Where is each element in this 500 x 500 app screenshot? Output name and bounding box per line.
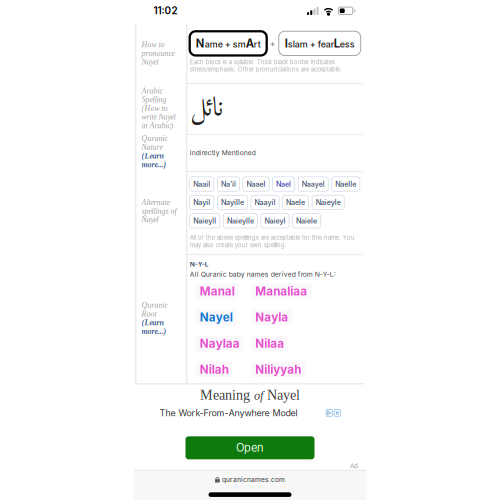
staticText: Quranic — [141, 301, 167, 309]
staticText: Nature — [141, 143, 162, 151]
staticText: more...) — [141, 160, 166, 169]
button[interactable]: Nayille — [217, 195, 247, 210]
button[interactable]: Nilaa — [251, 335, 288, 351]
staticText: Naiele — [296, 216, 317, 225]
staticText: Naael — [246, 180, 265, 188]
button[interactable]: Naail — [190, 177, 214, 191]
button[interactable]: Naele — [282, 195, 309, 210]
staticText: in Arabic) — [141, 121, 173, 130]
button[interactable]: Manal — [196, 283, 239, 299]
button[interactable]: Nayel — [196, 309, 237, 325]
staticText: 11:02 — [153, 5, 177, 17]
staticText: Nayil — [193, 198, 210, 207]
staticText: spellings of — [141, 207, 176, 215]
button[interactable]: Manaliaa — [251, 283, 311, 299]
staticText: The Work-From-Anywhere Model — [159, 407, 297, 418]
staticText: Naieyll — [193, 216, 216, 225]
button[interactable]: Nael — [272, 177, 295, 191]
staticText: Nayla — [255, 310, 288, 324]
button[interactable]: Naieylle — [223, 214, 257, 228]
staticText: write Nayel — [141, 113, 175, 121]
staticText: Niliyyah — [255, 362, 301, 376]
button[interactable]: Naelle — [332, 177, 360, 191]
button[interactable]: Niliyyah — [251, 361, 305, 377]
staticText: + — [270, 38, 276, 48]
button[interactable]: Nayil — [190, 195, 214, 210]
staticText: Naieylle — [227, 216, 254, 225]
staticText: Root — [141, 309, 156, 318]
staticText: Open — [236, 441, 264, 454]
staticText: Naylaa — [200, 336, 240, 350]
staticText: Naele — [286, 198, 305, 207]
button[interactable]: Open — [185, 436, 314, 459]
staticText: (How to — [141, 104, 167, 113]
staticText: Manal — [200, 284, 235, 298]
staticText: more...) — [141, 327, 166, 336]
staticText: Ad — [350, 462, 358, 470]
staticText: Manaliaa — [255, 284, 307, 298]
staticText: (Learn — [141, 318, 163, 327]
button[interactable]: Nilah — [196, 361, 233, 377]
staticText: Each block is a syllable. Thick black bo… — [190, 58, 342, 73]
staticText: Nilaa — [255, 336, 284, 350]
button[interactable]: Naayel — [298, 177, 328, 191]
staticText: N-Y-L — [190, 260, 209, 268]
staticText: How to — [141, 40, 164, 49]
button[interactable]: Naieyll — [190, 214, 220, 228]
staticText: Islam + fearLess — [285, 37, 355, 50]
staticText: Naieyle — [316, 198, 341, 207]
staticText: Naelle — [335, 180, 356, 188]
staticText: Nael — [276, 180, 291, 188]
button[interactable]: Naieyl — [261, 214, 289, 228]
staticText: (Learn — [141, 151, 163, 160]
staticText: quranicnames.com — [222, 475, 285, 484]
staticText: Na'il — [221, 180, 236, 188]
staticText: Naieyl — [264, 216, 285, 225]
staticText: Nayille — [221, 198, 244, 207]
button[interactable]: Nayla — [251, 309, 292, 325]
staticText: Nilah — [200, 362, 229, 376]
staticText: Naayil — [254, 198, 275, 207]
staticText: Indirectly Mentioned — [190, 149, 256, 157]
staticText: Nayel — [141, 215, 158, 224]
button[interactable]: Naylaa — [196, 335, 244, 351]
staticText: Spelling — [141, 95, 166, 104]
staticText: Arabic — [141, 86, 162, 95]
staticText: All of the above spellings are acceptabl… — [190, 234, 355, 249]
staticText: pronounce — [141, 49, 174, 58]
button[interactable]: Naayil — [251, 195, 279, 210]
button[interactable]: Naieyle — [312, 195, 344, 210]
staticText: Alternate — [141, 198, 169, 207]
staticText: Nayel — [141, 58, 158, 66]
staticText: All Quranic baby names derived from N-Y-… — [190, 270, 336, 278]
staticText: Meaning of Nayel — [200, 387, 300, 403]
staticText: Name + smArt — [196, 37, 261, 50]
staticText: Quranic — [141, 134, 167, 143]
button[interactable]: Na'il — [217, 177, 239, 191]
staticText: Naayel — [302, 180, 325, 188]
staticText: Naail — [193, 180, 210, 188]
button[interactable]: Naael — [243, 177, 269, 191]
staticText: Nayel — [200, 310, 233, 324]
staticText: نائل — [190, 85, 223, 132]
button[interactable]: Naiele — [292, 214, 321, 228]
